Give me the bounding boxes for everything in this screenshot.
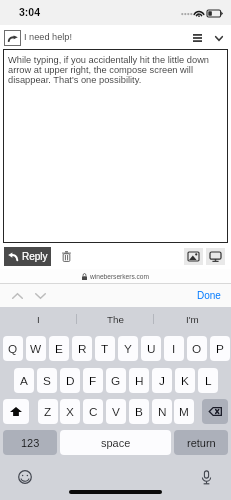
button[interactable]: Previous field xyxy=(6,284,28,307)
button[interactable]: E xyxy=(49,336,69,361)
button[interactable]: Forward xyxy=(4,30,21,46)
button[interactable]: space xyxy=(60,430,171,455)
staticText: N xyxy=(158,405,167,418)
staticText: H xyxy=(135,374,144,387)
button[interactable]: K xyxy=(175,368,195,393)
button[interactable]: I'm xyxy=(154,307,231,331)
staticText: I xyxy=(37,314,40,325)
button[interactable]: Preview xyxy=(206,248,225,265)
staticText: V xyxy=(112,405,120,418)
staticText: E xyxy=(55,342,63,355)
staticText: J xyxy=(159,374,165,387)
staticText: 3:04 xyxy=(19,6,41,18)
button[interactable]: O xyxy=(187,336,207,361)
staticText: Done xyxy=(197,290,221,301)
button[interactable]: Done xyxy=(187,284,231,307)
button[interactable]: Emoji xyxy=(14,466,36,488)
staticText: Q xyxy=(8,342,18,355)
staticText: The xyxy=(107,314,124,325)
button[interactable]: Menu xyxy=(188,29,206,46)
staticText: Y xyxy=(124,342,132,355)
staticText: P xyxy=(216,342,224,355)
button[interactable]: I xyxy=(0,307,77,331)
button[interactable]: J xyxy=(152,368,172,393)
staticText: S xyxy=(43,374,51,387)
staticText: B xyxy=(135,405,143,418)
button[interactable]: X xyxy=(60,399,80,424)
staticText: I need help! xyxy=(24,32,73,42)
staticText: wineberserkers.com xyxy=(90,273,149,280)
staticText: Z xyxy=(44,405,52,418)
button[interactable]: T xyxy=(95,336,115,361)
staticText: L xyxy=(205,374,212,387)
button[interactable]: Shift xyxy=(3,399,29,424)
staticText: space xyxy=(101,437,131,449)
staticText: W xyxy=(30,342,42,355)
button[interactable]: R xyxy=(72,336,92,361)
button[interactable]: Q xyxy=(3,336,23,361)
button[interactable]: U xyxy=(141,336,161,361)
button[interactable]: Y xyxy=(118,336,138,361)
button[interactable]: D xyxy=(60,368,80,393)
staticText: return xyxy=(187,437,216,449)
staticText: X xyxy=(66,405,74,418)
button[interactable]: The xyxy=(77,307,154,331)
staticText: While typing, if you accidentally hit th… xyxy=(8,55,220,85)
button[interactable]: P xyxy=(210,336,230,361)
button[interactable]: Insert image xyxy=(184,248,203,265)
button[interactable]: 123 xyxy=(3,430,57,455)
button[interactable]: W xyxy=(26,336,46,361)
button[interactable]: Reply xyxy=(4,247,51,266)
button[interactable]: return xyxy=(174,430,228,455)
staticText: U xyxy=(147,342,156,355)
staticText: R xyxy=(78,342,87,355)
button[interactable]: F xyxy=(83,368,103,393)
button[interactable]: Collapse xyxy=(210,30,228,47)
staticText: K xyxy=(181,374,189,387)
button[interactable]: I xyxy=(164,336,184,361)
staticText: A xyxy=(20,374,28,387)
staticText: 123 xyxy=(21,437,40,449)
button[interactable]: Z xyxy=(38,399,58,424)
staticText: G xyxy=(111,374,121,387)
staticText: I'm xyxy=(186,314,199,325)
button[interactable]: Next field xyxy=(29,284,51,307)
button[interactable]: N xyxy=(152,399,172,424)
button[interactable]: L xyxy=(198,368,218,393)
button[interactable]: V xyxy=(106,399,126,424)
button[interactable]: Delete xyxy=(58,247,75,266)
staticText: Reply xyxy=(22,251,48,262)
button[interactable]: H xyxy=(129,368,149,393)
button[interactable]: B xyxy=(129,399,149,424)
staticText: D xyxy=(66,374,75,387)
staticText: I xyxy=(172,342,176,355)
staticText: O xyxy=(192,342,202,355)
staticText: C xyxy=(89,405,98,418)
button[interactable]: Backspace xyxy=(202,399,228,424)
staticText: M xyxy=(179,405,189,418)
button[interactable]: Dictation xyxy=(195,466,217,488)
staticText: T xyxy=(101,342,109,355)
button[interactable]: M xyxy=(174,399,194,424)
button[interactable]: G xyxy=(106,368,126,393)
button[interactable]: A xyxy=(14,368,34,393)
button[interactable]: S xyxy=(37,368,57,393)
staticText: F xyxy=(89,374,97,387)
button[interactable]: C xyxy=(83,399,103,424)
